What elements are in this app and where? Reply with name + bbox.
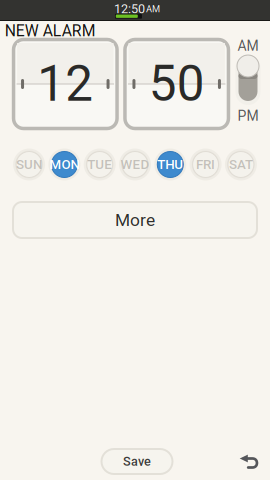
staticText: TUE [87,157,112,172]
staticText: FRI [196,157,215,172]
button[interactable]: SUN [14,149,44,179]
staticText: SUN [16,157,42,172]
staticText: 12 [37,55,93,113]
staticText: 12:50 [114,2,145,16]
button[interactable]: More [13,202,257,238]
staticText: AM [146,3,160,14]
button[interactable]: Back [233,445,265,477]
staticText: 50 [149,55,205,113]
staticText: Save [123,454,151,469]
staticText: THU [157,157,183,172]
button[interactable]: FRI [191,149,221,179]
button[interactable]: MON [49,149,79,179]
button[interactable]: Save [101,449,172,474]
button[interactable]: TUE [85,149,115,179]
staticText: MON [49,157,79,172]
staticText: More [115,210,155,230]
staticText: WED [120,157,149,172]
button[interactable]: THU [155,149,185,179]
staticText: NEW ALARM [5,22,96,40]
staticText: AM [237,38,258,54]
staticText: SAT [229,157,253,172]
button[interactable]: SAT [226,149,256,179]
staticText: PM [237,108,258,124]
button[interactable]: WED [120,149,150,179]
